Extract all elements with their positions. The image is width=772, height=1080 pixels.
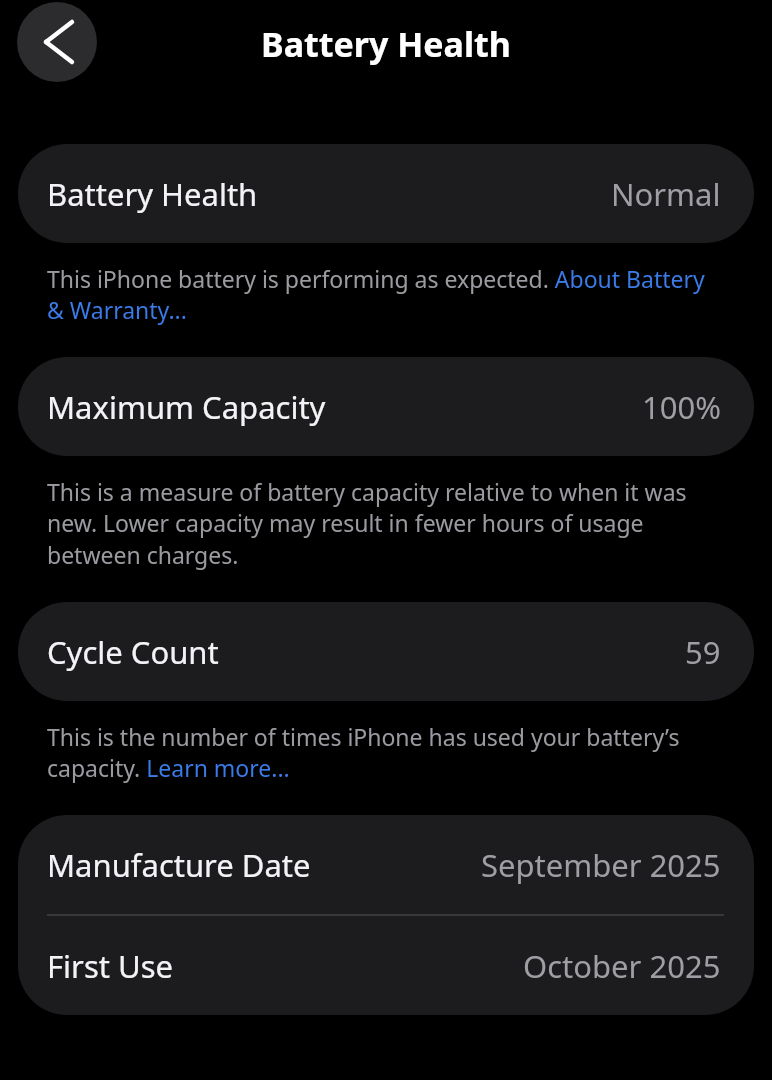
button[interactable]: Back (17, 2, 97, 82)
staticText: Battery Health (0, 21, 772, 67)
button[interactable]: Manufacture Date (18, 815, 754, 914)
button[interactable]: Maximum Capacity (18, 357, 754, 456)
staticText: 59 (685, 631, 721, 673)
staticText: First Use (47, 945, 173, 987)
staticText: September 2025 (481, 844, 721, 886)
staticText: Manufacture Date (47, 844, 311, 886)
staticText: October 2025 (523, 945, 721, 987)
staticText: This is the number of times iPhone has u… (47, 721, 722, 784)
staticText: Normal (611, 173, 721, 215)
staticText: This is a measure of battery capacity re… (47, 476, 722, 571)
staticText: Battery Health (47, 173, 258, 215)
button[interactable]: First Use (18, 916, 754, 1015)
staticText: Maximum Capacity (47, 386, 326, 428)
staticText: Cycle Count (47, 631, 219, 673)
staticText: 100% (642, 386, 721, 428)
staticText: This iPhone battery is performing as exp… (47, 263, 722, 326)
button[interactable]: Cycle Count (18, 602, 754, 701)
button[interactable]: Battery Health (18, 144, 754, 243)
